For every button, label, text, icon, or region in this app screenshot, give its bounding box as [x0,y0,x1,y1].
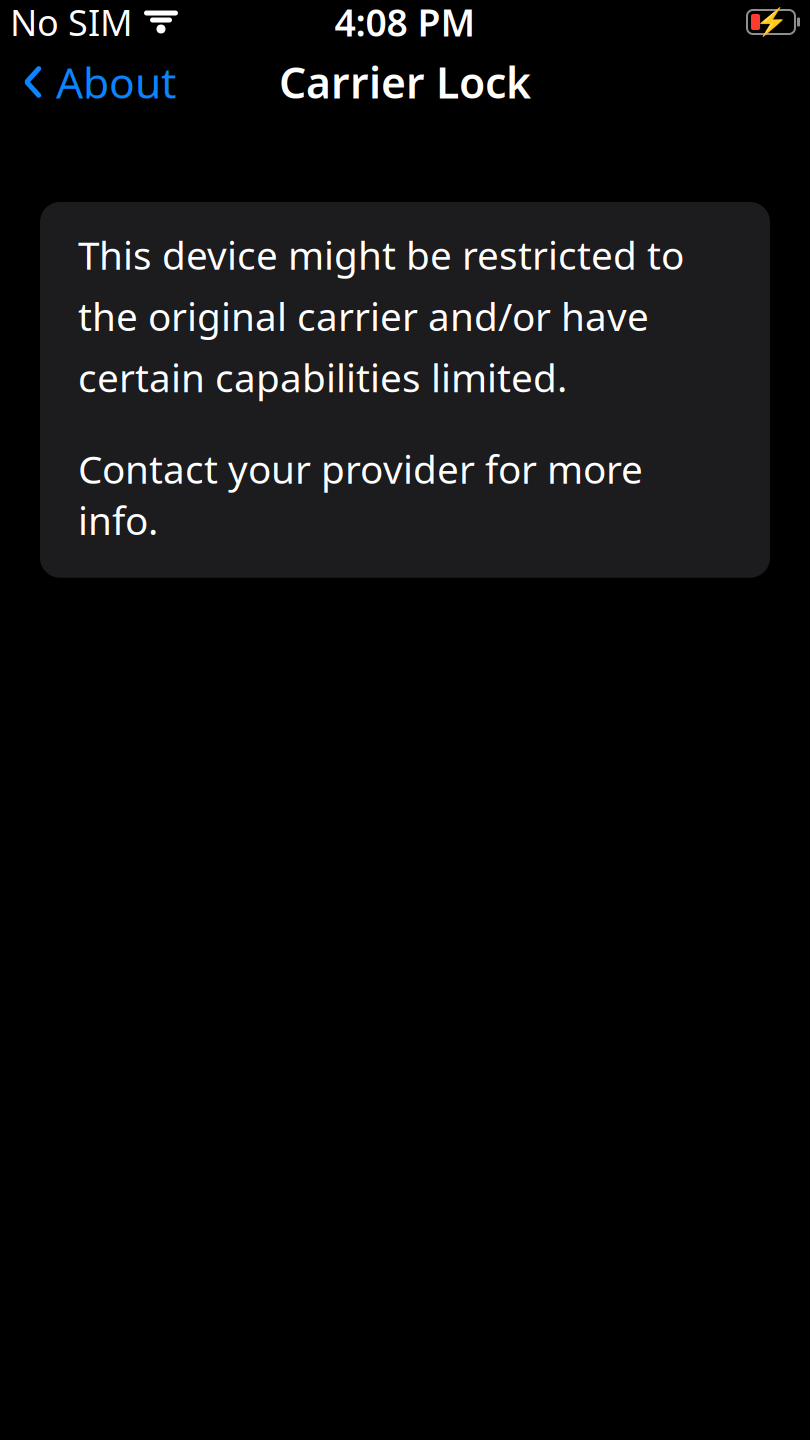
staticText: About [56,54,176,110]
staticText: Contact your provider for more info. [78,443,643,546]
staticText: Carrier Lock [279,54,531,110]
staticText: ⚡ [754,7,787,37]
staticText: No SIM [10,0,133,46]
staticText: 4:08 PM [334,0,475,47]
button[interactable]: Back to About [0,44,198,120]
staticText: This device might be restricted to the o… [78,229,684,403]
